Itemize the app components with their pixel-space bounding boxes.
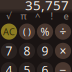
button[interactable]: 5 [19, 62, 35, 72]
staticText: 4 [5, 62, 12, 72]
staticText: 7 [5, 43, 12, 59]
button[interactable]: 7 [1, 43, 17, 59]
staticText: ! [50, 10, 53, 22]
staticText: e [63, 10, 68, 22]
button[interactable]: 9 [37, 43, 53, 59]
staticText: × [59, 43, 66, 59]
button[interactable]: ! [45, 10, 58, 21]
button[interactable]: ( ) [19, 23, 35, 40]
button[interactable]: 4 [1, 62, 17, 72]
button[interactable]: ^ [31, 10, 44, 21]
staticText: 5 [23, 62, 30, 72]
staticText: − [59, 62, 66, 72]
button[interactable]: 8 [19, 43, 35, 59]
button[interactable]: AC [1, 23, 17, 40]
button[interactable]: % [37, 23, 53, 40]
staticText: % [40, 24, 49, 39]
button[interactable]: ÷ [55, 23, 71, 40]
staticText: ÷ [59, 24, 66, 39]
staticText: 35,757 [25, 0, 69, 14]
staticText: 6 [41, 62, 48, 72]
button[interactable]: √ [2, 10, 15, 21]
button[interactable]: π [17, 10, 30, 21]
staticText: ( ) [23, 25, 31, 38]
staticText: 9 [41, 43, 48, 59]
button[interactable]: e [59, 10, 72, 21]
staticText: AC [3, 25, 15, 38]
button[interactable]: − [55, 62, 71, 72]
button[interactable]: 6 [37, 62, 53, 72]
staticText: ^ [35, 10, 40, 22]
staticText: 8 [23, 43, 30, 59]
staticText: √ [6, 11, 12, 21]
staticText: π [20, 10, 26, 22]
button[interactable]: × [55, 43, 71, 59]
